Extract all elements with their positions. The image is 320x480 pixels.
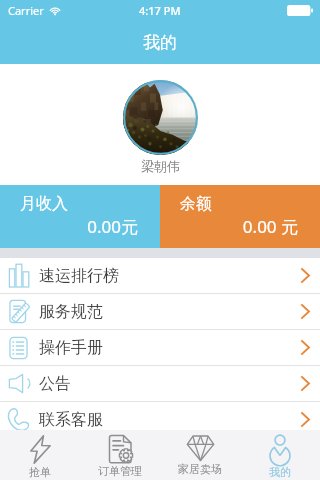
button[interactable]: 家居卖场 xyxy=(160,430,240,480)
button[interactable]: 订单管理 xyxy=(80,430,160,480)
staticText: 抢单 xyxy=(29,465,51,479)
staticText: 我的 xyxy=(143,32,177,53)
button[interactable]: 我的 xyxy=(240,430,320,480)
button[interactable]: 公告 xyxy=(0,366,320,402)
staticText: 梁朝伟 xyxy=(141,158,180,174)
button[interactable]: 速运排行榜 xyxy=(0,258,320,294)
staticText: Carrier xyxy=(8,3,44,18)
button[interactable] xyxy=(123,80,198,155)
staticText: 操作手册 xyxy=(39,338,103,358)
button[interactable]: 抢单 xyxy=(0,430,80,480)
button[interactable]: 服务规范 xyxy=(0,294,320,330)
staticText: 家居卖场 xyxy=(178,462,222,476)
staticText: 服务规范 xyxy=(39,302,103,322)
button[interactable]: 余额 xyxy=(160,185,320,248)
staticText: 我的 xyxy=(269,465,291,479)
staticText: 公告 xyxy=(39,374,71,394)
staticText: 0.00 元 xyxy=(180,215,298,238)
staticText: 订单管理 xyxy=(98,464,142,478)
staticText: 联系客服 xyxy=(39,410,103,430)
button[interactable]: 操作手册 xyxy=(0,330,320,366)
staticText: 速运排行榜 xyxy=(39,266,119,286)
staticText: 月收入 xyxy=(20,194,68,214)
staticText: 余额 xyxy=(180,194,212,214)
button[interactable]: 月收入 xyxy=(0,185,160,248)
button[interactable]: 联系客服 xyxy=(0,402,320,438)
staticText: 0.00元 xyxy=(20,215,138,238)
staticText: 4:17 PM xyxy=(139,3,181,18)
